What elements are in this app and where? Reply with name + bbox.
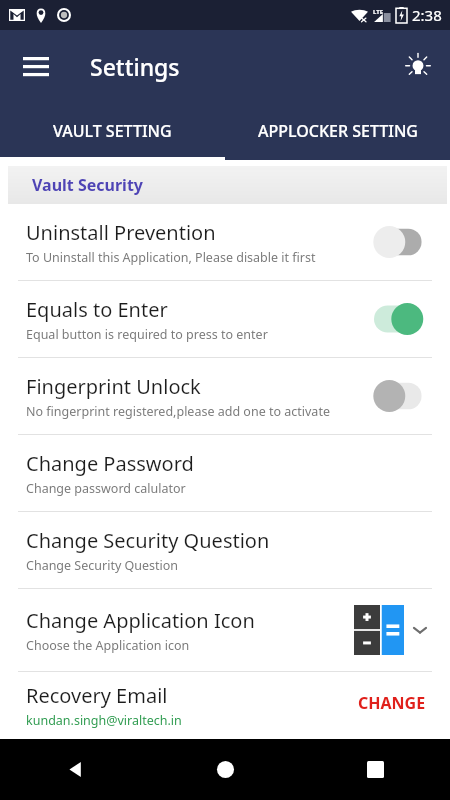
button[interactable]: Home (150, 739, 300, 800)
button[interactable]: Back (0, 739, 150, 800)
staticText: Fingerprint Unlock (26, 373, 201, 400)
staticText: Recovery Email (26, 682, 168, 709)
button[interactable]: Choose application icon (350, 601, 432, 659)
staticText: To Uninstall this Application, Please di… (26, 249, 316, 266)
button[interactable]: Change Security Question (0, 512, 450, 588)
button[interactable]: Toggle, off (374, 225, 432, 259)
button[interactable]: Recovery Email (0, 672, 450, 739)
staticText: VAULT SETTING (53, 120, 172, 142)
button[interactable]: Uninstall Prevention (0, 204, 450, 280)
button[interactable]: VAULT SETTING (0, 102, 225, 160)
staticText: kundan.singh@viraltech.in (26, 712, 182, 729)
staticText: Change Security Question (26, 527, 270, 554)
staticText: Uninstall Prevention (26, 219, 216, 246)
staticText: No fingerprint registered,please add one… (26, 403, 330, 420)
staticText: Settings (90, 51, 180, 82)
button[interactable]: CHANGE (352, 688, 432, 718)
button[interactable]: Open navigation menu (12, 42, 60, 90)
button[interactable]: Change Password (0, 435, 450, 511)
button[interactable]: Change Application Icon (0, 589, 450, 671)
staticText: CHANGE (358, 692, 426, 714)
staticText: Choose the Application icon (26, 637, 190, 654)
staticText: LTE (373, 8, 384, 16)
staticText: Equal button is required to press to ent… (26, 326, 268, 343)
staticText: 2:38 (412, 5, 442, 25)
staticText: Change Security Question (26, 557, 179, 574)
button[interactable]: Equals to Enter toggle, on (374, 302, 432, 336)
staticText: Vault Security (32, 174, 143, 196)
button[interactable]: APPLOCKER SETTING (225, 102, 450, 160)
staticText: APPLOCKER SETTING (258, 120, 418, 142)
staticText: Change Application Icon (26, 607, 255, 634)
staticText: Change Password (26, 450, 194, 477)
button[interactable]: Recent apps (300, 739, 450, 800)
button[interactable]: Toggle flashlight (396, 44, 440, 88)
staticText: Equals to Enter (26, 296, 168, 323)
button[interactable]: Fingerprint Unlock (0, 358, 450, 434)
staticText: Change password calulator (26, 480, 186, 497)
button[interactable]: Toggle, off (374, 379, 432, 413)
button[interactable]: Equals to Enter (0, 281, 450, 357)
